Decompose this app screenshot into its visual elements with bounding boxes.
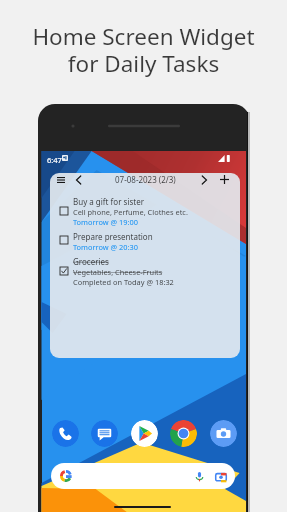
- button[interactable]: Phone: [52, 420, 79, 447]
- button[interactable]: Add task: [218, 173, 231, 186]
- button[interactable]: Prepare presentation: [50, 231, 240, 255]
- staticText: Completed on Today @ 18:32: [73, 277, 174, 287]
- button[interactable]: Buy a gift for sister: [50, 196, 240, 231]
- button[interactable]: Groceries: [50, 256, 240, 291]
- staticText: Groceries: [73, 256, 109, 267]
- button[interactable]: Next day: [198, 173, 211, 186]
- staticText: Cell phone, Perfume, Clothes etc.: [73, 207, 188, 217]
- button[interactable]: Chrome: [170, 420, 197, 447]
- button[interactable]: Google Lens: [213, 469, 228, 484]
- button[interactable]: Play Store: [131, 420, 158, 447]
- staticText: Prepare presentation: [73, 231, 153, 242]
- staticText: Vegetables, Cheese-Fruits: [73, 267, 163, 277]
- staticText: Tomorrow @ 19:00: [73, 217, 138, 227]
- button[interactable]: Messages: [91, 420, 118, 447]
- staticText: Home Screen Widget for Daily Tasks: [0, 21, 287, 78]
- staticText: 6:47: [47, 155, 62, 165]
- staticText: Buy a gift for sister: [73, 196, 144, 207]
- button[interactable]: Previous day: [72, 173, 85, 186]
- button[interactable]: Voice search: [192, 469, 206, 483]
- staticText: 07-08-2023 (2/3): [115, 174, 176, 185]
- button[interactable]: Camera: [210, 420, 237, 447]
- button[interactable]: Menu: [54, 173, 67, 186]
- button[interactable]: Voice search: [51, 463, 235, 489]
- staticText: Tomorrow @ 20:30: [73, 242, 138, 252]
